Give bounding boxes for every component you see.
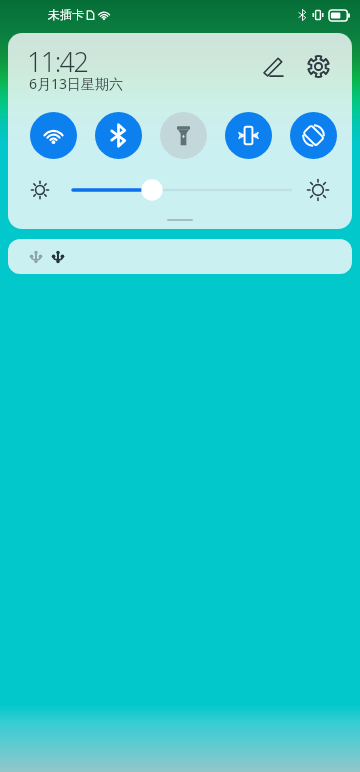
button[interactable]: Vibrate [225,112,272,159]
button[interactable]: Bluetooth [95,112,142,159]
button[interactable]: USB notification [8,239,352,274]
button[interactable]: Wi-Fi [30,112,77,159]
button[interactable]: Edit [251,44,295,88]
button[interactable]: Brightness [72,177,291,203]
staticText: 11:42 [27,43,88,80]
button[interactable]: Settings [296,44,340,88]
button[interactable]: Flashlight [160,112,207,159]
button[interactable]: Auto rotate [290,112,337,159]
staticText: 6月13日星期六 [29,74,124,93]
staticText: 未插卡 [48,7,84,22]
